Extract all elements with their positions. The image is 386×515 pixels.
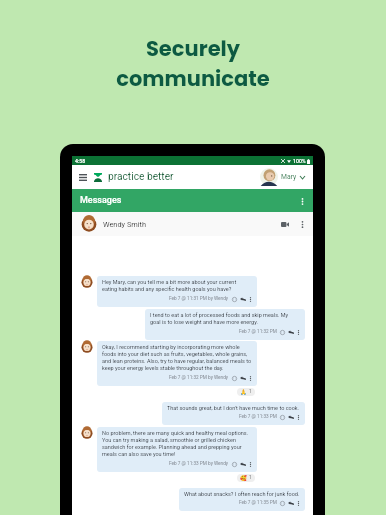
staticText: 1 — [249, 475, 252, 481]
button[interactable]: 🙏 — [237, 388, 255, 396]
button[interactable]: 🥰 — [237, 474, 255, 482]
staticText: That sounds great, but I don't have much… — [167, 405, 300, 411]
staticText: 🙏 — [240, 389, 247, 395]
button[interactable]: Menu — [77, 169, 88, 185]
staticText: Feb 7 @ 11:35 PM — [239, 500, 277, 506]
button[interactable]: That sounds great, but I don't have much… — [162, 402, 305, 425]
staticText: Okay, I recommend starting by incorporat… — [102, 344, 252, 372]
staticText: Feb 7 @ 11:32 PM — [239, 329, 277, 335]
button[interactable]: Conversation options — [295, 217, 309, 231]
staticText: Feb 7 @ 11:33 PM — [239, 414, 277, 420]
staticText: Feb 7 @ 11:32 PM by Wendy — [169, 375, 229, 381]
button[interactable]: Mary — [260, 168, 313, 186]
staticText: I tend to eat a lot of processed foods a… — [150, 312, 300, 326]
button[interactable]: Hey Mary, can you tell me a bit more abo… — [97, 276, 257, 307]
staticText: 4:58 — [75, 158, 86, 164]
button[interactable]: Okay, I recommend starting by incorporat… — [97, 341, 257, 386]
staticText: Securely communicate — [116, 34, 270, 94]
staticText: 100% — [293, 158, 306, 164]
button[interactable]: What about snacks? I often reach for jun… — [179, 488, 305, 511]
button[interactable]: More options — [295, 194, 309, 208]
staticText: Feb 7 @ 11:33 PM by Wendy — [169, 461, 229, 467]
staticText: What about snacks? I often reach for jun… — [184, 491, 300, 497]
button[interactable]: I tend to eat a lot of processed foods a… — [145, 309, 305, 340]
staticText: Feb 7 @ 11:31 PM by Wendy — [169, 296, 229, 302]
staticText: Mary — [281, 173, 297, 181]
button[interactable]: No problem, there are many quick and hea… — [97, 427, 257, 472]
staticText: practice better — [108, 171, 174, 183]
staticText: Wendy Smith — [103, 220, 147, 229]
staticText: 1 — [249, 389, 252, 395]
staticText: Messages — [80, 195, 122, 206]
staticText: Hey Mary, can you tell me a bit more abo… — [102, 279, 252, 293]
staticText: No problem, there are many quick and hea… — [102, 430, 252, 458]
button[interactable]: Video call — [278, 217, 292, 231]
staticText: 🥰 — [240, 475, 247, 481]
